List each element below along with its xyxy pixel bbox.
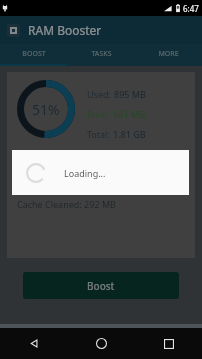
- staticText: MORE: [158, 49, 179, 59]
- staticText: Boost: [87, 279, 115, 293]
- button[interactable]: Back: [0, 328, 68, 359]
- staticText: RAM Booster: [28, 22, 102, 38]
- staticText: Total:: [87, 128, 113, 140]
- staticText: 6:47: [183, 3, 199, 14]
- staticText: Cache Cleaned: 292 MB: [17, 198, 116, 210]
- button[interactable]: Boost: [23, 272, 179, 299]
- button[interactable]: BOOST: [0, 44, 68, 64]
- button[interactable]: TASKS: [68, 44, 135, 64]
- button[interactable]: MORE: [135, 44, 202, 64]
- button[interactable]: Home: [68, 328, 135, 359]
- staticText: Used:: [87, 88, 114, 100]
- staticText: TASKS: [91, 49, 112, 59]
- staticText: Memory Cleaned: 325 MB: [17, 176, 126, 188]
- staticText: BOOST: [22, 49, 46, 59]
- staticText: Free:: [87, 108, 111, 120]
- staticText: 51%: [32, 100, 60, 119]
- staticText: 961 MB: [111, 108, 146, 120]
- button[interactable]: Recents: [135, 328, 202, 359]
- button[interactable]: App icon: [7, 24, 20, 37]
- staticText: Loading...: [64, 167, 106, 179]
- staticText: 1.81 GB: [113, 128, 146, 140]
- staticText: 895 MB: [114, 88, 146, 100]
